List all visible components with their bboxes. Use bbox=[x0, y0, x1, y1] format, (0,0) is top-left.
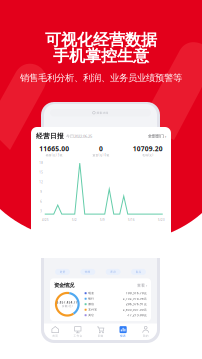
staticText: 5/2 bbox=[72, 218, 77, 222]
staticText: 盘点 bbox=[135, 270, 141, 273]
staticText: 我的 bbox=[143, 334, 149, 337]
button[interactable]: 首页 bbox=[44, 323, 67, 340]
staticText: 销售 bbox=[85, 270, 91, 273]
staticText: 全部部门 › bbox=[148, 133, 166, 139]
staticText: 销售毛利分析、利润、业务员业绩预警等 bbox=[20, 72, 182, 84]
staticText: 支付宝 bbox=[88, 308, 97, 311]
staticText: 微信 bbox=[88, 303, 94, 306]
button[interactable]: 盘点 bbox=[131, 269, 146, 275]
staticText: -17,213.00元 bbox=[127, 313, 147, 317]
staticText: 资金情况 bbox=[54, 282, 74, 288]
staticText: 11665.00 bbox=[39, 144, 69, 153]
button[interactable]: 报表 bbox=[112, 323, 134, 340]
staticText: 经营日报 bbox=[36, 132, 64, 140]
button[interactable]: 搜索功能 bbox=[44, 104, 157, 116]
staticText: 现金 bbox=[88, 292, 94, 295]
staticText: 100,316.70元 bbox=[126, 291, 147, 295]
button[interactable]: 我的 bbox=[134, 323, 157, 340]
staticText: 12 bbox=[39, 180, 43, 184]
staticText: 今日2022-06-25 bbox=[66, 133, 92, 139]
staticText: 进货 bbox=[59, 270, 65, 273]
staticText: 查看 › bbox=[137, 282, 147, 288]
staticText: 4/25 bbox=[42, 218, 49, 222]
button[interactable]: 全部部门 › bbox=[148, 133, 166, 139]
staticText: 退货(元) 0笔 bbox=[92, 153, 109, 157]
staticText: 2,732,974.96元 bbox=[123, 297, 147, 300]
staticText: 9 bbox=[40, 190, 42, 194]
staticText: 毛利(元) bbox=[142, 153, 153, 157]
staticText: 18 bbox=[39, 161, 43, 165]
button[interactable]: 采购 bbox=[89, 323, 112, 340]
staticText: 10709.20 bbox=[133, 144, 163, 153]
staticText: 销售(元) 3笔 bbox=[46, 153, 63, 157]
staticText: 其它 bbox=[88, 314, 94, 317]
staticText: 0 bbox=[99, 144, 103, 153]
staticText: 报表 bbox=[120, 334, 126, 337]
staticText: 5,857,454.77 bbox=[57, 301, 78, 304]
staticText: 6 bbox=[40, 200, 42, 203]
staticText: 采购 bbox=[97, 334, 103, 337]
staticText: 5/9 bbox=[100, 218, 105, 222]
staticText: 5/23 bbox=[158, 218, 165, 222]
staticText: 工作台 bbox=[73, 334, 82, 337]
staticText: 5/16 bbox=[128, 218, 135, 222]
button[interactable]: 进货 bbox=[55, 269, 70, 275]
staticText: 搜索功能 bbox=[96, 111, 108, 114]
staticText: 15 bbox=[39, 171, 43, 174]
staticText: 3 bbox=[40, 209, 42, 213]
button[interactable]: 库存 bbox=[106, 269, 121, 275]
staticText: 2,833,037.00元 bbox=[123, 308, 147, 311]
staticText: 可视化经营数据 bbox=[45, 30, 157, 50]
staticText: 银行 bbox=[88, 297, 94, 300]
button[interactable]: 工作台 bbox=[67, 323, 89, 340]
staticText: 206,376.91元 bbox=[126, 302, 147, 306]
button[interactable]: 销售 bbox=[80, 269, 95, 275]
staticText: 手机掌控生意 bbox=[53, 46, 149, 66]
staticText: 首页 bbox=[52, 334, 58, 337]
button[interactable]: 查看 › bbox=[137, 282, 147, 288]
staticText: 余额(元) bbox=[62, 304, 73, 308]
staticText: 库存 bbox=[110, 270, 116, 273]
